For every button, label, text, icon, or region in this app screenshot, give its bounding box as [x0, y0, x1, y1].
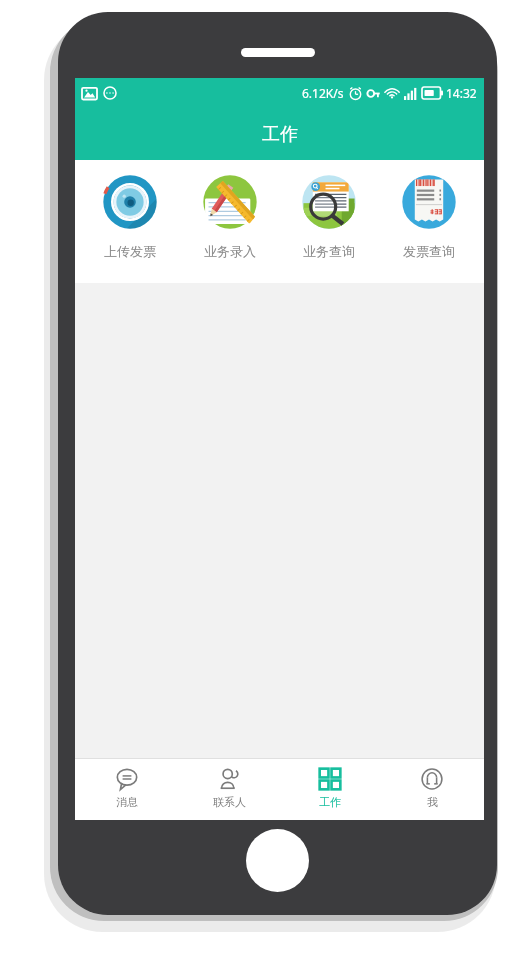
staticText: 14:32: [446, 85, 477, 101]
staticText: 工作: [262, 123, 298, 146]
staticText: 6.12K/s: [302, 85, 344, 101]
button[interactable]: 我: [382, 759, 482, 820]
staticText: 消息: [116, 795, 138, 809]
staticText: 发票查询: [403, 243, 455, 259]
staticText: 业务录入: [204, 243, 256, 259]
staticText: 我: [427, 795, 438, 809]
staticText: 联系人: [213, 795, 246, 809]
staticText: 工作: [319, 795, 341, 809]
button[interactable]: 业务录入: [185, 160, 275, 259]
button[interactable]: 发票查询: [384, 160, 474, 259]
staticText: 业务查询: [303, 243, 355, 259]
button[interactable]: 上传发票: [85, 160, 175, 259]
button[interactable]: 工作: [280, 759, 380, 820]
button[interactable]: 联系人: [179, 759, 279, 820]
button[interactable]: 业务查询: [284, 160, 374, 259]
staticText: 上传发票: [104, 243, 156, 259]
button[interactable]: 消息: [77, 759, 177, 820]
